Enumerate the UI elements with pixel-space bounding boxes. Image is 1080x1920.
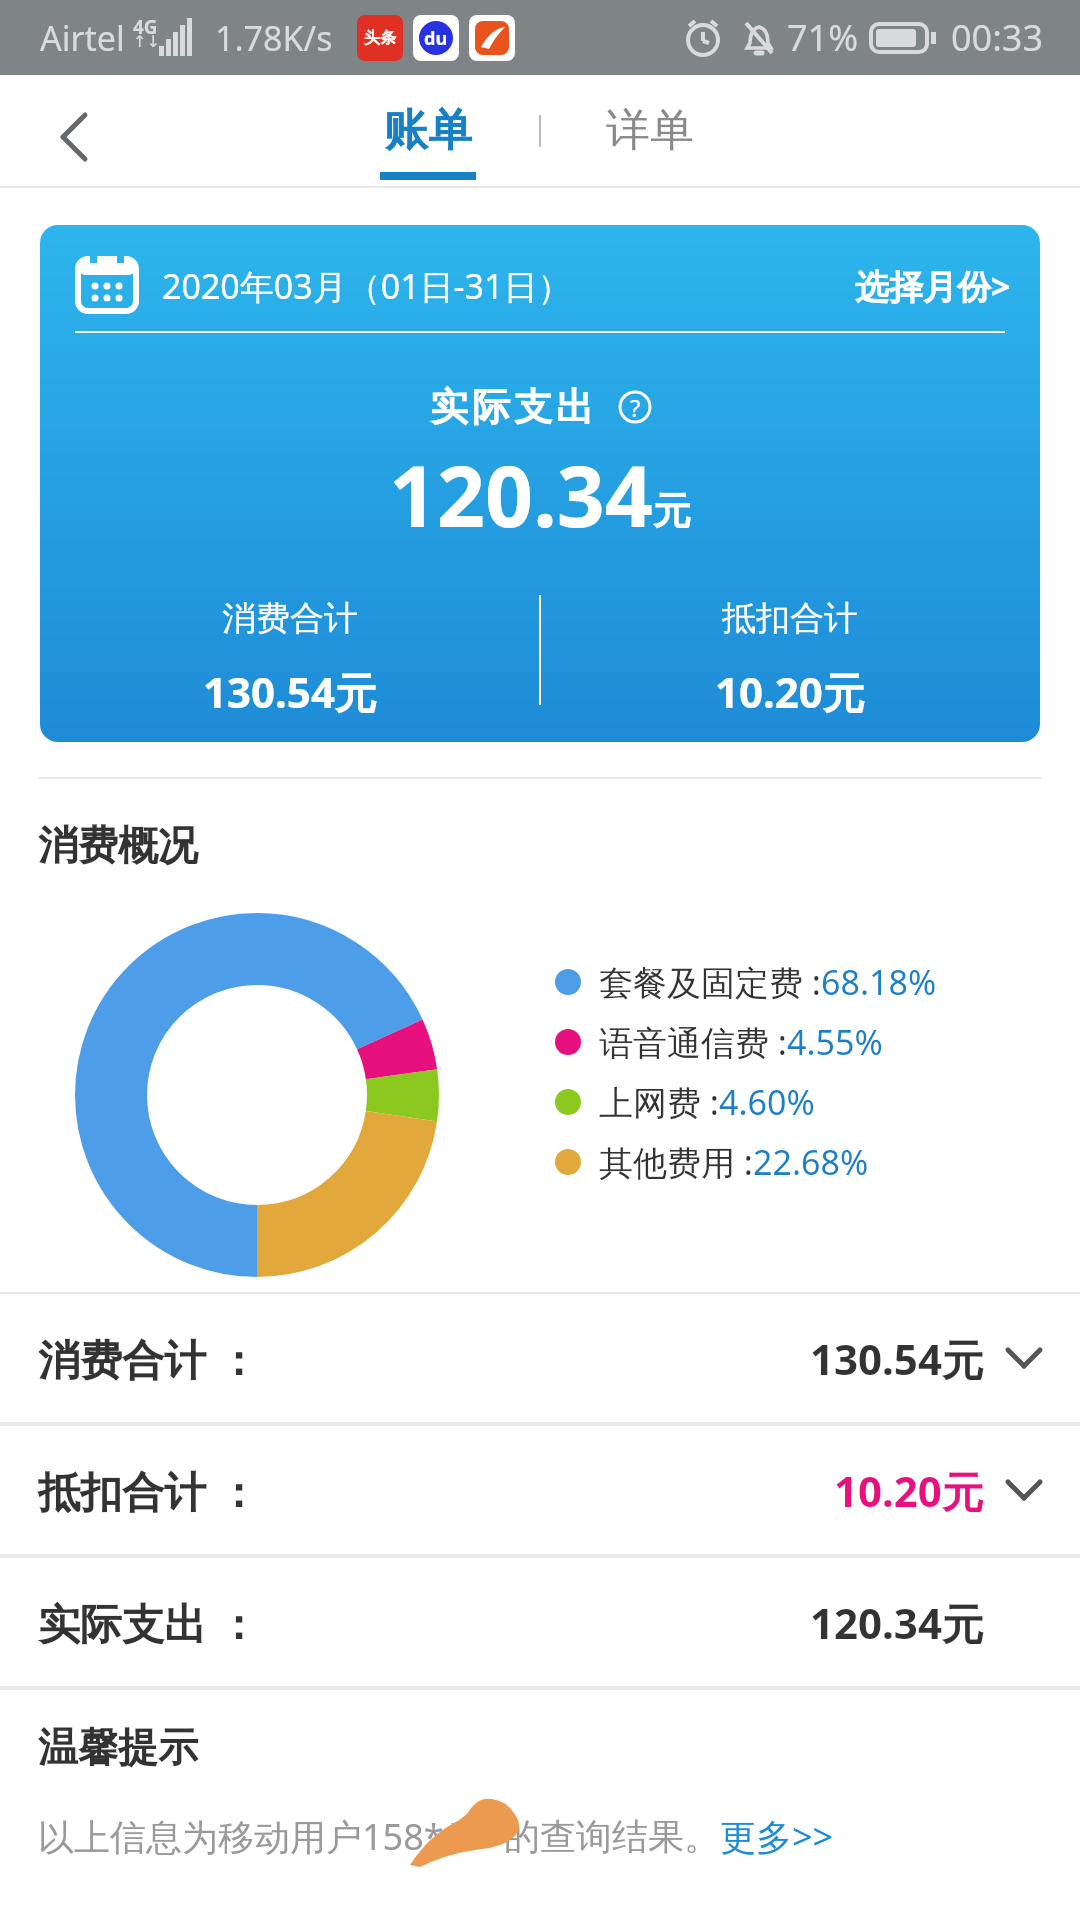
staticText: 消费合计 <box>222 597 358 640</box>
staticText: du <box>424 26 448 51</box>
staticText: 抵扣合计 ： <box>38 1462 259 1519</box>
staticText: 10.20元 <box>834 1462 984 1519</box>
staticText: 120.34 <box>389 437 653 551</box>
staticText: 120.34元 <box>810 1594 984 1651</box>
staticText: 抵扣合计 <box>722 597 858 640</box>
button[interactable]: 账单 <box>360 75 495 186</box>
button[interactable]: 更多>> <box>720 1812 834 1861</box>
button[interactable]: 详单 <box>582 75 717 186</box>
button[interactable]: 实际支出 ： <box>0 1556 1080 1688</box>
staticText: ↑↓ <box>133 32 160 51</box>
staticText: 4.60% <box>719 1079 815 1125</box>
staticText: ? <box>630 391 641 424</box>
staticText: 的查询结果。 <box>504 1814 720 1859</box>
staticText: 详单 <box>606 103 694 158</box>
staticText: 4.55% <box>787 1019 883 1065</box>
staticText: 实际支出 <box>428 383 596 431</box>
staticText: 语音通信费 : <box>599 1019 787 1065</box>
staticText: 130.54元 <box>203 663 377 720</box>
staticText: 22.68% <box>753 1139 869 1185</box>
button[interactable] <box>30 95 120 175</box>
staticText: 71% <box>787 13 859 62</box>
staticText: 元 <box>653 487 691 535</box>
staticText: 1.78K/s <box>215 15 333 61</box>
staticText: 消费合计 ： <box>38 1330 259 1387</box>
staticText: 130.54元 <box>810 1330 984 1387</box>
button[interactable]: 抵扣合计 ： <box>0 1424 1080 1556</box>
staticText: 头条 <box>364 28 396 48</box>
staticText: 2020年03月（01日-31日） <box>162 263 572 309</box>
staticText: 实际支出 ： <box>38 1594 259 1651</box>
button[interactable]: 消费合计 ： <box>0 1292 1080 1424</box>
staticText: 温馨提示 <box>38 1722 198 1772</box>
staticText: 10.20元 <box>715 663 865 720</box>
staticText: 68.18% <box>821 959 937 1005</box>
button[interactable]: 选择月份> <box>855 263 1011 309</box>
staticText: Airtel <box>40 15 125 61</box>
staticText: 其他费用 : <box>599 1139 753 1185</box>
staticText: 消费概况 <box>38 820 198 870</box>
staticText: 4G <box>133 14 158 40</box>
staticText: 账单 <box>384 103 472 158</box>
staticText: 以上信息为移动用户158**** <box>38 1812 504 1861</box>
button[interactable]: 2020年03月（01日-31日） <box>40 225 1040 742</box>
staticText: 套餐及固定费 : <box>599 959 821 1005</box>
staticText: 上网费 : <box>599 1079 719 1125</box>
staticText: 00:33 <box>951 13 1044 62</box>
